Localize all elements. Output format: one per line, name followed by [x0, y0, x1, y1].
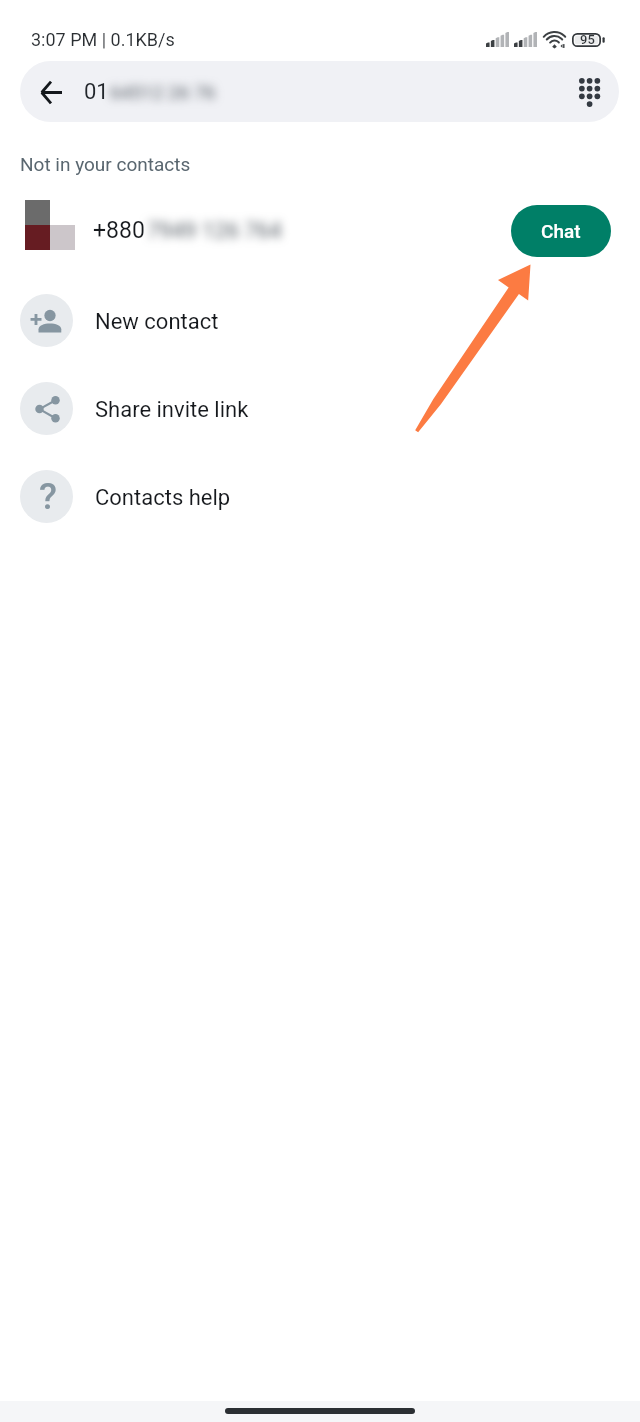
button[interactable]: New contact: [0, 277, 640, 363]
staticText: 64512 26 76: [110, 81, 216, 103]
button[interactable]: Chat: [511, 205, 611, 257]
staticText: Contacts help: [95, 485, 231, 511]
staticText: 01: [84, 79, 109, 105]
staticText: New contact: [95, 309, 219, 335]
button[interactable]: Share invite link: [0, 365, 640, 451]
button[interactable]: ?: [0, 453, 640, 539]
button[interactable]: +880: [0, 190, 640, 272]
staticText: Share invite link: [95, 397, 249, 423]
staticText: 95: [580, 32, 595, 47]
staticText: Chat: [541, 220, 581, 242]
staticText: +880: [93, 217, 145, 244]
staticText: Not in your contacts: [20, 153, 191, 175]
staticText: 3:07 PM | 0.1KB/s: [31, 29, 175, 50]
button[interactable]: Back: [27, 68, 75, 116]
button[interactable]: Dialpad: [557, 67, 619, 116]
button[interactable]: Back: [20, 61, 619, 122]
staticText: 7949 126 764: [147, 218, 282, 244]
staticText: ?: [39, 475, 57, 518]
